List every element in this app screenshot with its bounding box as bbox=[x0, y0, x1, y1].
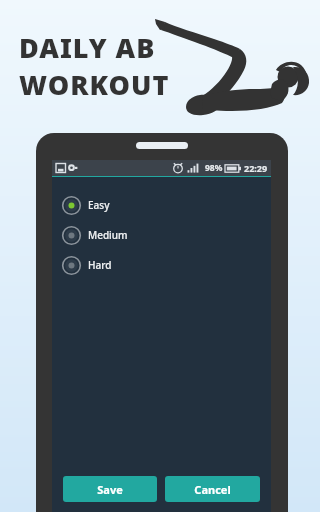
button[interactable]: Hard bbox=[52, 250, 271, 280]
staticText: 22:29 bbox=[244, 162, 268, 174]
button[interactable]: Cancel bbox=[165, 476, 260, 502]
staticText: Cancel bbox=[194, 482, 231, 497]
staticText: Save bbox=[97, 482, 123, 497]
staticText: 98% bbox=[205, 162, 223, 174]
button[interactable]: Easy bbox=[52, 190, 271, 220]
button[interactable]: Save bbox=[63, 476, 157, 502]
staticText: DAILY AB bbox=[19, 29, 156, 66]
staticText: Easy bbox=[88, 198, 110, 212]
staticText: Medium bbox=[88, 228, 128, 242]
staticText: Hard bbox=[88, 258, 112, 272]
button[interactable]: Medium bbox=[52, 220, 271, 250]
staticText: WORKOUT bbox=[19, 66, 170, 103]
